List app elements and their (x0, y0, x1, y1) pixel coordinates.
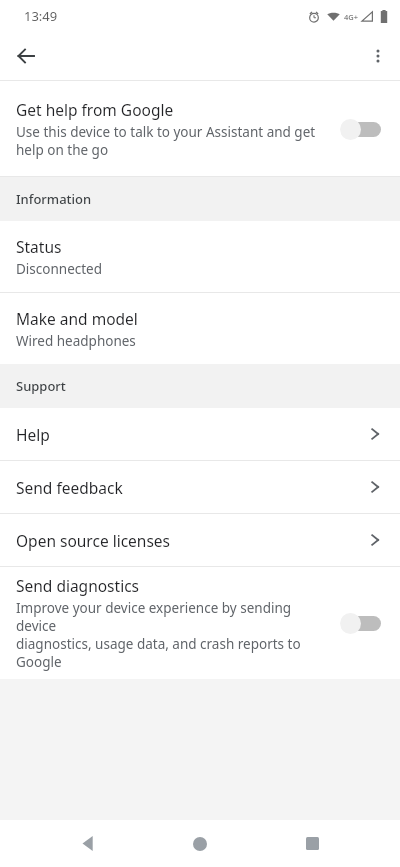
staticText: Support (16, 377, 66, 395)
button[interactable]: Open source licenses (0, 514, 400, 566)
staticText: Improve your device experience by sendin… (16, 599, 328, 671)
button[interactable]: Send feedback (0, 461, 400, 513)
staticText: Status (16, 236, 62, 257)
button[interactable]: Help (0, 408, 400, 460)
staticText: 4G+ (344, 12, 359, 22)
button[interactable]: Toggle (340, 608, 386, 638)
staticText: Send feedback (16, 477, 368, 498)
staticText: Send diagnostics (16, 575, 139, 596)
staticText: Make and model (16, 308, 138, 329)
staticText: Wired headphones (16, 332, 136, 350)
button[interactable]: Back (8, 38, 44, 74)
button[interactable]: Make and model (0, 293, 400, 364)
staticText: 13:49 (24, 7, 58, 25)
staticText: Open source licenses (16, 530, 368, 551)
staticText: Use this device to talk to your Assistan… (16, 123, 316, 159)
staticText: Get help from Google (16, 99, 174, 120)
button[interactable]: Get help from Google (0, 81, 400, 176)
staticText: Information (16, 190, 92, 208)
button[interactable]: Home (176, 820, 224, 867)
button[interactable]: Back (64, 820, 112, 867)
staticText: Disconnected (16, 260, 103, 278)
button[interactable]: Recent apps (288, 820, 336, 867)
button[interactable]: Toggle (340, 114, 386, 144)
button[interactable]: Send diagnostics (0, 567, 400, 679)
button[interactable]: More options (360, 38, 396, 74)
button[interactable]: Status (0, 221, 400, 292)
staticText: Help (16, 424, 368, 445)
